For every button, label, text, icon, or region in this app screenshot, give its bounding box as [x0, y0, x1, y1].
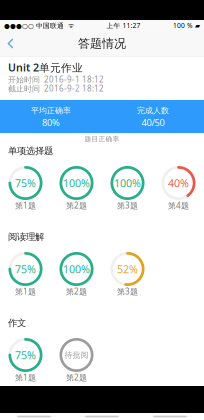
staticText: 上午 11:27: [106, 21, 140, 30]
staticText: 100 % ▰: [173, 21, 200, 30]
staticText: 80%: [42, 116, 60, 129]
staticText: 75%: [15, 176, 36, 190]
staticText: 平均正确率: [31, 106, 71, 115]
staticText: 阅读理解: [8, 231, 44, 243]
staticText: 100%: [63, 262, 90, 276]
button[interactable]: 待批阅: [51, 338, 102, 383]
staticText: 题目正确率: [84, 135, 119, 143]
button[interactable]: 75%: [0, 252, 51, 297]
staticText: 100%: [114, 176, 141, 190]
staticText: 75%: [15, 348, 36, 362]
staticText: 单项选择题: [8, 145, 53, 157]
staticText: 40/50: [141, 116, 164, 129]
staticText: 第2题: [66, 200, 87, 211]
button[interactable]: 40%: [153, 166, 204, 211]
staticText: 75%: [15, 262, 36, 276]
staticText: 100%: [63, 176, 90, 190]
staticText: 第1题: [15, 372, 36, 383]
staticText: 开始时间 2016-9-1 18:12: [8, 74, 104, 85]
staticText: 52%: [117, 262, 138, 276]
staticText: 截止时间 2016-9-2 18:12: [8, 83, 104, 94]
button[interactable]: 75%: [0, 338, 51, 383]
staticText: 第1题: [15, 200, 36, 211]
staticText: Unit 2单元作业: [8, 60, 83, 75]
button[interactable]: 52%: [102, 252, 153, 297]
button[interactable]: Back: [0, 31, 24, 56]
button[interactable]: 100%: [102, 166, 153, 211]
button[interactable]: 100%: [51, 166, 102, 211]
staticText: 第3题: [117, 286, 138, 297]
staticText: 40%: [168, 176, 189, 190]
staticText: 第4题: [168, 200, 189, 211]
staticText: 作文: [8, 317, 26, 329]
staticText: 第2题: [66, 286, 87, 297]
staticText: ●●●○○ 中国联通 ᯤ: [4, 21, 74, 30]
staticText: 答题情况: [78, 36, 126, 51]
staticText: 第2题: [66, 372, 87, 383]
staticText: 第3题: [117, 200, 138, 211]
staticText: 待批阅: [64, 350, 88, 360]
staticText: 第1题: [15, 286, 36, 297]
button[interactable]: 100%: [51, 252, 102, 297]
staticText: 完成人数: [137, 106, 169, 115]
button[interactable]: 75%: [0, 166, 51, 211]
